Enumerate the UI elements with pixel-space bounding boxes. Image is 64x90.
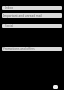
button[interactable]: Compose [53, 85, 58, 89]
button[interactable]: Important and unread mail [2, 13, 62, 18]
button[interactable]: Inbox [2, 6, 62, 10]
button[interactable]: Promotions and offers [2, 47, 62, 51]
staticText: Promotions and offers [3, 47, 35, 51]
staticText: Important and unread mail [3, 14, 43, 18]
staticText: Social [5, 24, 14, 28]
staticText: Inbox [5, 6, 14, 10]
button[interactable]: Social [2, 24, 62, 28]
